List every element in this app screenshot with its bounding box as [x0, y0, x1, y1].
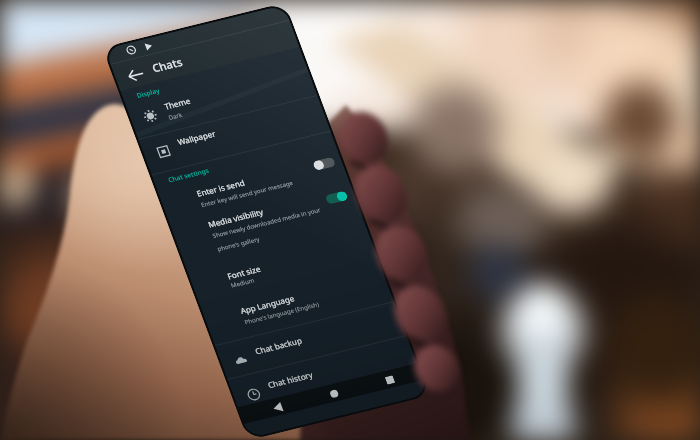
- staticText: Chats: [145, 44, 189, 86]
- staticText: Chat settings: [164, 152, 213, 198]
- button[interactable]: Home: [326, 386, 342, 401]
- button[interactable]: Media visibility toggle: [322, 183, 352, 212]
- staticText: Wallpaper: [172, 114, 221, 160]
- button[interactable]: App Language: [235, 274, 299, 335]
- staticText: Medium: [227, 268, 258, 298]
- staticText: Theme: [159, 86, 195, 120]
- staticText: App Language: [235, 274, 299, 335]
- staticText: Chat history: [263, 353, 318, 406]
- button[interactable]: Recents: [382, 373, 398, 387]
- button[interactable]: Wallpaper: [172, 114, 221, 160]
- button[interactable]: Enter is send toggle: [309, 149, 339, 178]
- button[interactable]: Chat backup: [250, 319, 307, 372]
- button[interactable]: Back: [118, 58, 153, 92]
- button[interactable]: Media visibility: [203, 187, 268, 249]
- staticText: Dark: [165, 106, 186, 127]
- staticText: Media visibility: [203, 187, 268, 249]
- button[interactable]: Chat history: [263, 353, 318, 406]
- staticText: Display: [133, 78, 164, 108]
- staticText: Show newly downloaded media in your: [209, 169, 324, 277]
- staticText: Enter is send: [192, 160, 250, 215]
- staticText: Chat backup: [250, 319, 307, 372]
- button[interactable]: Back: [269, 398, 288, 417]
- button[interactable]: Enter is send: [192, 160, 250, 215]
- staticText: Enter key will send your message: [197, 147, 297, 241]
- staticText: phone's gallery: [214, 221, 263, 268]
- staticText: Font size: [222, 251, 266, 293]
- staticText: Phone's language (English): [241, 275, 323, 352]
- button[interactable]: Theme: [159, 86, 195, 120]
- button[interactable]: Font size: [222, 251, 266, 293]
